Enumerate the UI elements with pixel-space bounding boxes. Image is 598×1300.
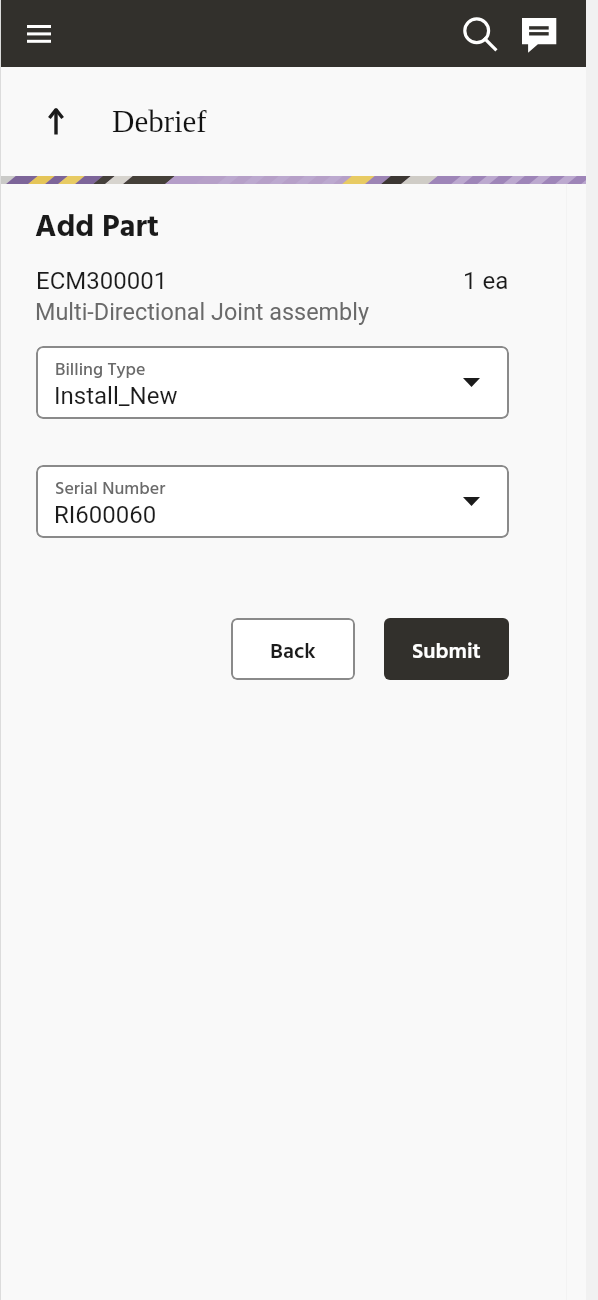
staticText: Submit bbox=[412, 635, 481, 670]
staticText: Add Part bbox=[35, 203, 159, 253]
staticText: ECM300001 bbox=[36, 267, 168, 295]
staticText: Debrief bbox=[112, 104, 207, 138]
button[interactable]: Menu bbox=[12, 7, 66, 61]
staticText: Billing Type bbox=[55, 356, 146, 385]
button[interactable]: Back bbox=[231, 618, 355, 680]
staticText: 1 ea bbox=[463, 267, 509, 295]
staticText: RI600060 bbox=[54, 501, 157, 529]
button[interactable]: Messages bbox=[514, 10, 566, 62]
staticText: Back bbox=[270, 635, 316, 670]
button[interactable]: Submit bbox=[384, 618, 509, 680]
staticText: Multi-Directional Joint assembly bbox=[35, 298, 369, 325]
button[interactable]: Serial Number bbox=[36, 465, 509, 538]
button[interactable]: Search bbox=[452, 6, 508, 62]
button[interactable]: Back bbox=[40, 102, 72, 134]
button[interactable]: Billing Type bbox=[36, 346, 509, 419]
staticText: Install_New bbox=[54, 382, 178, 410]
staticText: Serial Number bbox=[55, 475, 166, 504]
